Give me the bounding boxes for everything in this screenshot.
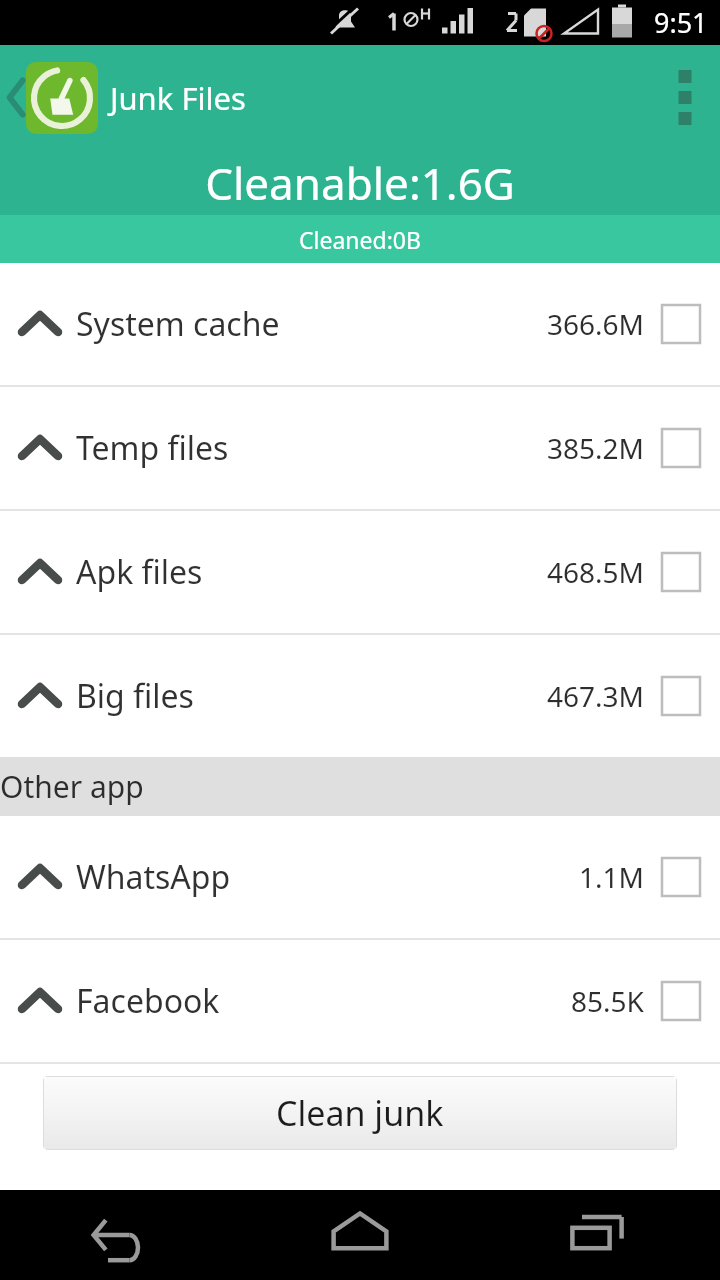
staticText: Cleanable:1.6G: [205, 153, 515, 213]
button[interactable]: Select Temp files: [662, 429, 700, 467]
staticText: Cleaned:0B: [299, 224, 421, 255]
staticText: 385.2M: [547, 429, 644, 467]
button[interactable]: Home: [240, 1190, 480, 1280]
staticText: Temp files: [76, 426, 229, 470]
staticText: Other app: [0, 766, 144, 807]
button[interactable]: Select Facebook: [662, 982, 700, 1020]
button[interactable]: Select Apk files: [662, 553, 700, 591]
staticText: Junk Files: [110, 77, 246, 119]
staticText: 85.5K: [571, 982, 644, 1020]
button[interactable]: More options: [654, 45, 720, 150]
button[interactable]: Back: [0, 45, 26, 150]
staticText: 366.6M: [547, 305, 644, 343]
staticText: 1.1M: [579, 858, 644, 896]
button[interactable]: Select WhatsApp: [662, 858, 700, 896]
button[interactable]: Recent apps: [480, 1190, 720, 1280]
button[interactable]: Clean junk: [43, 1076, 677, 1150]
staticText: Clean junk: [276, 1090, 444, 1136]
staticText: 468.5M: [547, 553, 644, 591]
button[interactable]: Select Big files: [662, 677, 700, 715]
staticText: Facebook: [76, 979, 220, 1023]
button[interactable]: WhatsApp: [0, 816, 720, 938]
button[interactable]: Apk files: [0, 511, 720, 633]
staticText: Apk files: [76, 550, 203, 594]
button[interactable]: Select System cache: [662, 305, 700, 343]
staticText: WhatsApp: [76, 855, 231, 899]
button[interactable]: Facebook: [0, 940, 720, 1062]
button[interactable]: Temp files: [0, 387, 720, 509]
staticText: Big files: [76, 674, 194, 718]
button[interactable]: System cache: [0, 263, 720, 385]
staticText: 467.3M: [547, 677, 644, 715]
staticText: 9:51: [654, 4, 708, 41]
staticText: System cache: [76, 302, 280, 346]
button[interactable]: Back: [0, 1190, 240, 1280]
button[interactable]: Big files: [0, 635, 720, 757]
